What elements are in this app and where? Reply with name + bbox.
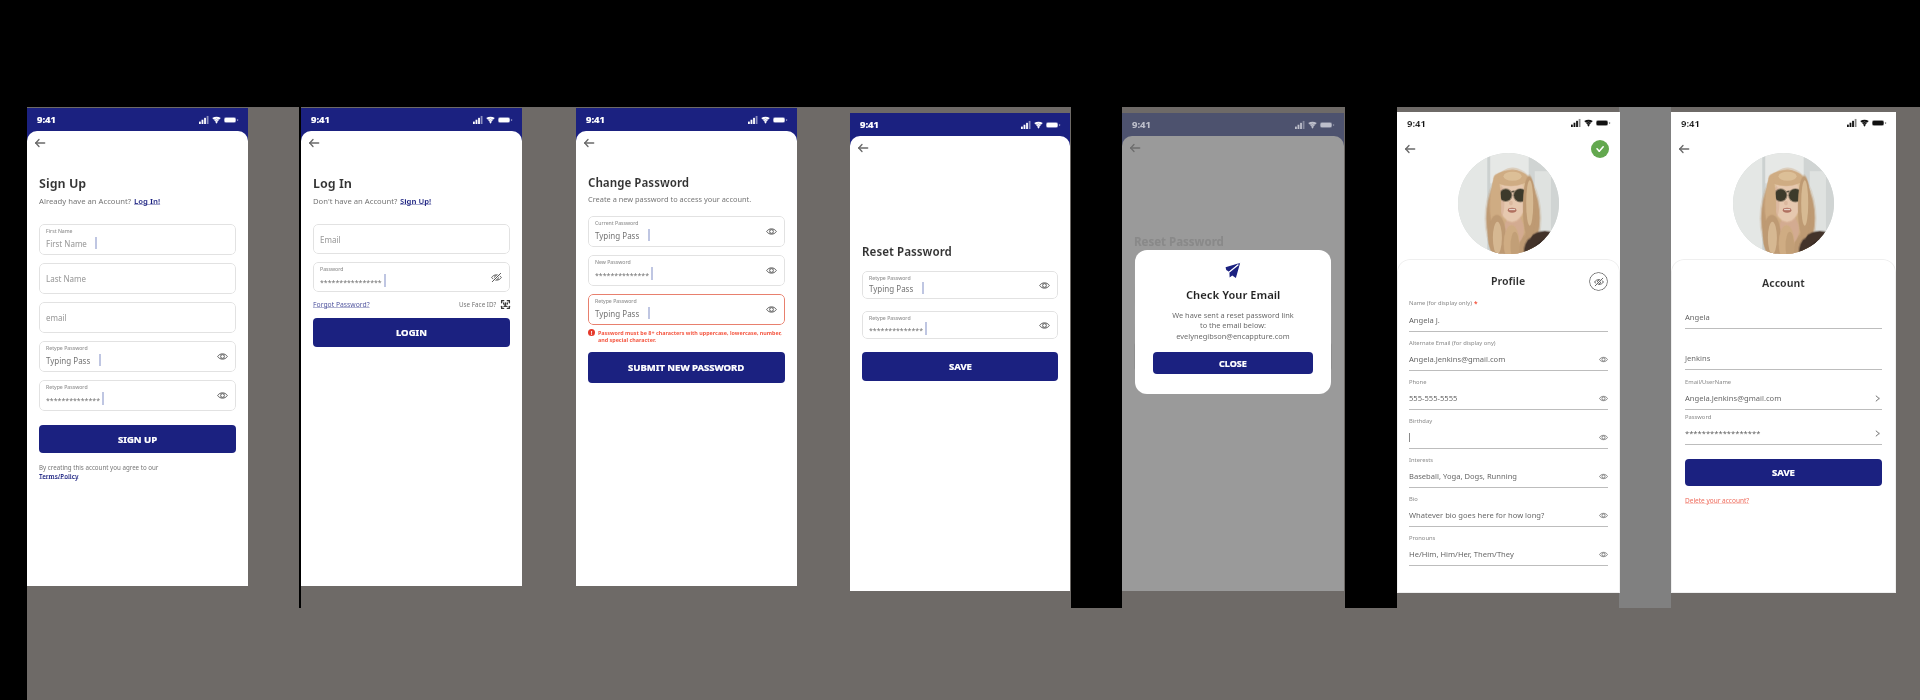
staticText: 9:41 <box>311 113 330 126</box>
staticText: Last Name <box>46 273 87 284</box>
button[interactable]: Back <box>30 133 50 153</box>
button[interactable]: Back <box>853 138 873 158</box>
staticText: Pronouns <box>1409 534 1436 542</box>
staticText: Birthday <box>1409 417 1433 425</box>
staticText: Whatever bio goes here for how long? <box>1409 510 1545 520</box>
staticText: First Name <box>46 227 73 234</box>
button[interactable]: Retype Password <box>862 271 1058 299</box>
button[interactable]: email <box>39 302 236 333</box>
staticText: Angela J. <box>1409 315 1440 325</box>
staticText: Typing Pass <box>595 230 640 241</box>
button[interactable]: Current Password <box>588 216 785 247</box>
staticText: New Password <box>595 258 631 265</box>
staticText: Create a new password to access your acc… <box>588 194 752 204</box>
staticText: Don't have an Account? <box>313 196 400 206</box>
staticText: 9:41 <box>37 113 56 126</box>
button[interactable]: Retype Password <box>588 294 785 325</box>
staticText: By creating this account you agree to ou… <box>39 463 159 471</box>
staticText: 9:41 <box>860 118 879 131</box>
button[interactable]: Back <box>1125 138 1145 158</box>
button[interactable]: Password <box>313 262 510 292</box>
button[interactable]: Back <box>304 133 324 153</box>
staticText: email <box>46 312 67 323</box>
button[interactable]: Angela <box>1685 311 1882 329</box>
staticText: Angela.Jenkins@gmail.com <box>1409 354 1506 364</box>
button[interactable]: LOGIN <box>313 318 510 347</box>
staticText: Email <box>320 234 341 245</box>
staticText: LOGIN <box>396 326 427 339</box>
staticText: First Name <box>46 238 87 249</box>
button[interactable]: Jenkins <box>1685 352 1882 370</box>
staticText: Retype Password <box>46 383 88 390</box>
button[interactable]: Alternate Email (for display ony) <box>1409 339 1608 371</box>
button[interactable]: SIGN UP <box>39 425 236 453</box>
staticText: Change Password <box>588 175 690 191</box>
button[interactable]: New Password <box>588 255 785 286</box>
staticText: Password must be 8+ characters with uppe… <box>598 329 785 344</box>
staticText: Typing Pass <box>595 308 640 319</box>
button[interactable]: SAVE <box>862 352 1058 381</box>
staticText: Angela <box>1685 312 1710 322</box>
button[interactable]: Phone <box>1409 378 1608 410</box>
staticText: * <box>1474 299 1478 308</box>
button[interactable]: Retype Password <box>39 341 236 372</box>
button[interactable]: Name (for display only) <box>1409 299 1608 332</box>
button[interactable]: Retype Password <box>39 380 236 411</box>
button[interactable]: Confirm <box>1591 140 1609 158</box>
staticText: ************** <box>46 396 100 406</box>
button[interactable]: Bio <box>1409 495 1608 527</box>
button[interactable]: Last Name <box>39 263 236 294</box>
button[interactable]: Back <box>1400 139 1420 159</box>
staticText: Retype Password <box>595 297 637 304</box>
staticText: Use Face ID? <box>459 300 497 309</box>
staticText: ****************** <box>1685 428 1761 438</box>
staticText: Phone <box>1409 378 1427 386</box>
button[interactable]: SAVE <box>1685 459 1882 486</box>
staticText: SAVE <box>949 360 972 373</box>
button[interactable]: Terms/Policy <box>39 472 79 480</box>
button[interactable]: Interests <box>1409 456 1608 488</box>
staticText: Password <box>1685 413 1712 421</box>
staticText: Already have an Account? <box>39 196 134 206</box>
button[interactable]: Back <box>579 133 599 153</box>
button[interactable]: Retype Password <box>862 311 1058 339</box>
button[interactable]: Delete your account? <box>1685 496 1750 505</box>
staticText: Retype Password <box>869 314 911 321</box>
staticText: Jenkins <box>1685 353 1711 363</box>
button[interactable]: Back <box>1674 139 1694 159</box>
other: Use Face ID <box>501 300 510 309</box>
button[interactable]: CLOSE <box>1153 352 1313 374</box>
staticText: Profile <box>1491 274 1526 288</box>
staticText: Current Password <box>595 219 639 226</box>
staticText: 9:41 <box>1132 118 1151 131</box>
button[interactable]: First Name <box>39 224 236 255</box>
staticText: ! <box>591 330 593 336</box>
staticText: Log In <box>313 175 352 192</box>
staticText: Reset Password <box>862 244 952 260</box>
button[interactable]: Password <box>1685 413 1882 445</box>
button[interactable]: Forgot Password? <box>313 300 370 309</box>
staticText: He/Him, Him/Her, Them/They <box>1409 549 1514 559</box>
staticText: We have sent a reset password link to th… <box>1148 310 1318 341</box>
button[interactable]: Toggle visibility <box>1589 272 1608 291</box>
staticText: ************** <box>869 326 923 336</box>
staticText: Baseball, Yoga, Dogs, Running <box>1409 471 1518 481</box>
button[interactable]: Birthday <box>1409 417 1608 449</box>
button[interactable]: Email/UserName <box>1685 378 1882 410</box>
staticText: Sign Up <box>39 175 87 192</box>
staticText: Bio <box>1409 495 1418 503</box>
button[interactable]: Email <box>313 224 510 254</box>
staticText: Account <box>1762 276 1805 290</box>
staticText: Angela.Jenkins@gmail.com <box>1685 393 1782 403</box>
staticText: 9:41 <box>586 113 605 126</box>
staticText: 9:41 <box>1681 117 1700 130</box>
button[interactable]: Pronouns <box>1409 534 1608 566</box>
staticText: Retype Password <box>46 344 88 351</box>
button[interactable]: SUBMIT NEW PASSWORD <box>588 352 785 383</box>
staticText: Name (for display only) <box>1409 299 1472 307</box>
staticText: Typing Pass <box>869 283 914 294</box>
button[interactable]: Sign Up! <box>400 196 432 206</box>
button[interactable]: Log In! <box>134 196 161 206</box>
staticText: CLOSE <box>1219 357 1247 369</box>
